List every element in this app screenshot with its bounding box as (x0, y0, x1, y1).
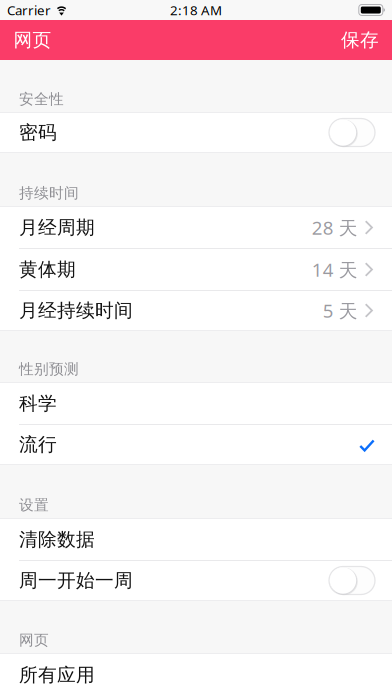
button[interactable]: 保存 (332, 20, 388, 60)
staticText: 月经持续时间 (19, 299, 133, 322)
staticText: 保存 (341, 28, 379, 51)
staticText: 黄体期 (19, 258, 76, 281)
staticText: 网页 (19, 631, 49, 649)
staticText: 28 天 (312, 215, 358, 240)
button[interactable]: 流行 (0, 425, 392, 464)
button[interactable]: 网页 (4, 20, 61, 60)
staticText: 科学 (19, 392, 57, 415)
button[interactable]: 月经周期 (0, 207, 392, 248)
button[interactable]: 所有应用 (0, 654, 392, 696)
button[interactable]: 黄体期 (0, 249, 392, 290)
button[interactable]: 密码 (0, 113, 392, 152)
staticText: 持续时间 (19, 184, 79, 202)
staticText: 所有应用 (19, 663, 95, 686)
staticText: 清除数据 (19, 528, 95, 551)
staticText: 14 天 (312, 257, 358, 282)
staticText: 安全性 (19, 90, 64, 108)
staticText: 性别预测 (19, 360, 79, 378)
button[interactable]: 科学 (0, 383, 392, 424)
staticText: 网页 (13, 28, 51, 51)
staticText: 月经周期 (19, 216, 95, 239)
staticText: 流行 (19, 433, 57, 456)
staticText: 周一开始一周 (19, 569, 133, 592)
staticText: Carrier (7, 1, 51, 19)
staticText: 5 天 (323, 298, 358, 323)
button[interactable]: 月经持续时间 (0, 291, 392, 330)
staticText: 设置 (19, 496, 49, 514)
button[interactable]: 周一开始一周 (0, 561, 392, 600)
staticText: 密码 (19, 121, 57, 144)
button[interactable]: 清除数据 (0, 519, 392, 560)
staticText: 2:18 AM (170, 1, 222, 19)
